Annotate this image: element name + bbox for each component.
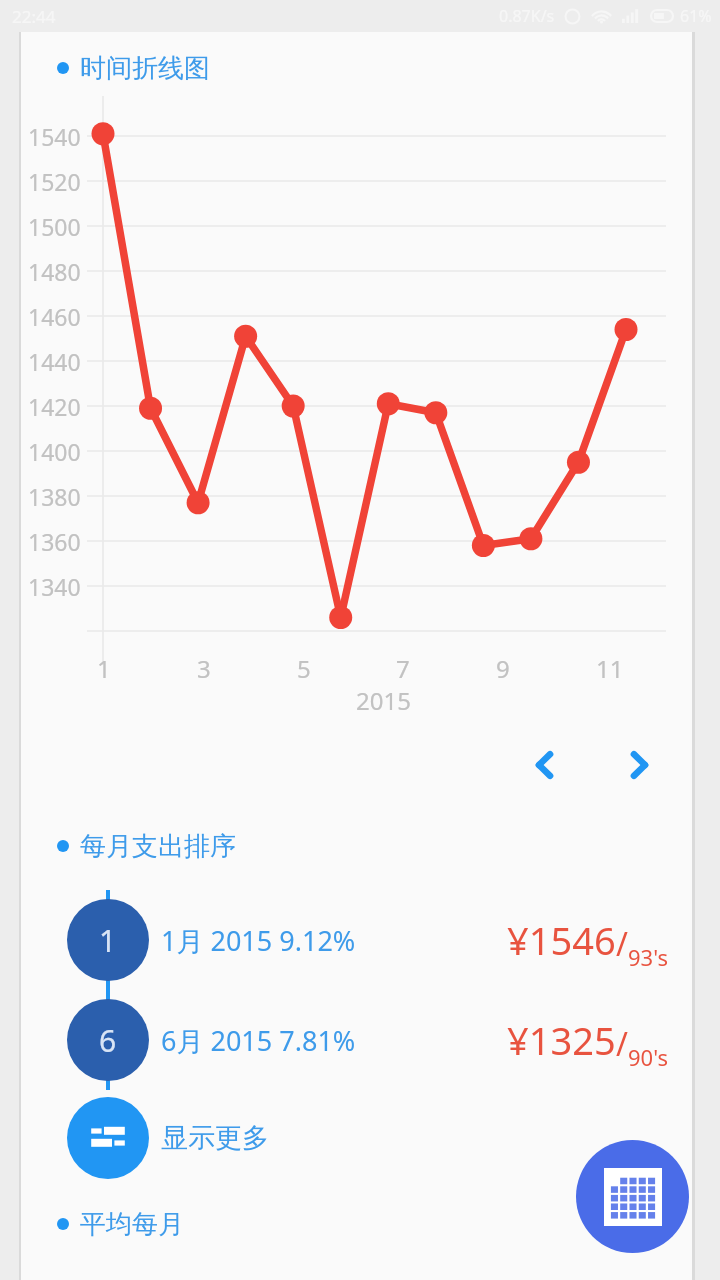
staticText: 1 — [99, 920, 117, 961]
staticText: 0.87K/s — [499, 5, 555, 27]
staticText: 5 — [297, 652, 311, 685]
button[interactable]: Next — [606, 732, 672, 798]
staticText: 6月 2015 7.81% — [161, 1022, 356, 1059]
staticText: 显示更多 — [161, 1121, 269, 1155]
staticText: / — [616, 922, 628, 966]
staticText: / — [616, 1022, 628, 1066]
staticText: 1340 — [28, 571, 81, 602]
staticText: 1月 2015 9.12% — [161, 922, 356, 959]
staticText: 61% — [680, 5, 712, 27]
staticText: 1360 — [28, 526, 81, 557]
button[interactable]: 1 — [21, 890, 692, 990]
staticText: 11 — [596, 652, 624, 685]
staticText: 22:44 — [12, 5, 56, 28]
staticText: ¥1325 — [507, 1014, 616, 1066]
staticText: 2015 — [356, 684, 411, 717]
staticText: 9 — [496, 652, 510, 685]
staticText: 6 — [99, 1020, 117, 1061]
staticText: 平均每月 — [80, 1208, 184, 1241]
button[interactable]: Previous — [512, 732, 578, 798]
staticText: 每月支出排序 — [80, 830, 236, 863]
staticText: 93's — [628, 942, 668, 972]
staticText: 1540 — [28, 121, 81, 152]
staticText: 1480 — [28, 256, 81, 287]
button[interactable]: 平均每月 — [21, 1200, 692, 1248]
button[interactable]: 时间折线图 — [21, 44, 692, 92]
staticText: 7 — [396, 652, 410, 685]
staticText: 时间折线图 — [80, 52, 210, 85]
button[interactable]: 每月支出排序 — [21, 822, 692, 870]
staticText: 90's — [628, 1042, 668, 1072]
button[interactable]: Calendar — [576, 1140, 689, 1253]
staticText: 1380 — [28, 481, 81, 512]
staticText: 1520 — [28, 166, 81, 197]
staticText: 3 — [197, 652, 211, 685]
staticText: 1500 — [28, 211, 81, 242]
staticText: 1400 — [28, 436, 81, 467]
staticText: 1460 — [28, 301, 81, 332]
staticText: 1420 — [28, 391, 81, 422]
button[interactable]: 显示更多 — [21, 1090, 692, 1186]
staticText: ¥1546 — [507, 914, 616, 966]
staticText: 1 — [97, 652, 111, 685]
button[interactable]: 6 — [21, 990, 692, 1090]
staticText: 1440 — [28, 346, 81, 377]
